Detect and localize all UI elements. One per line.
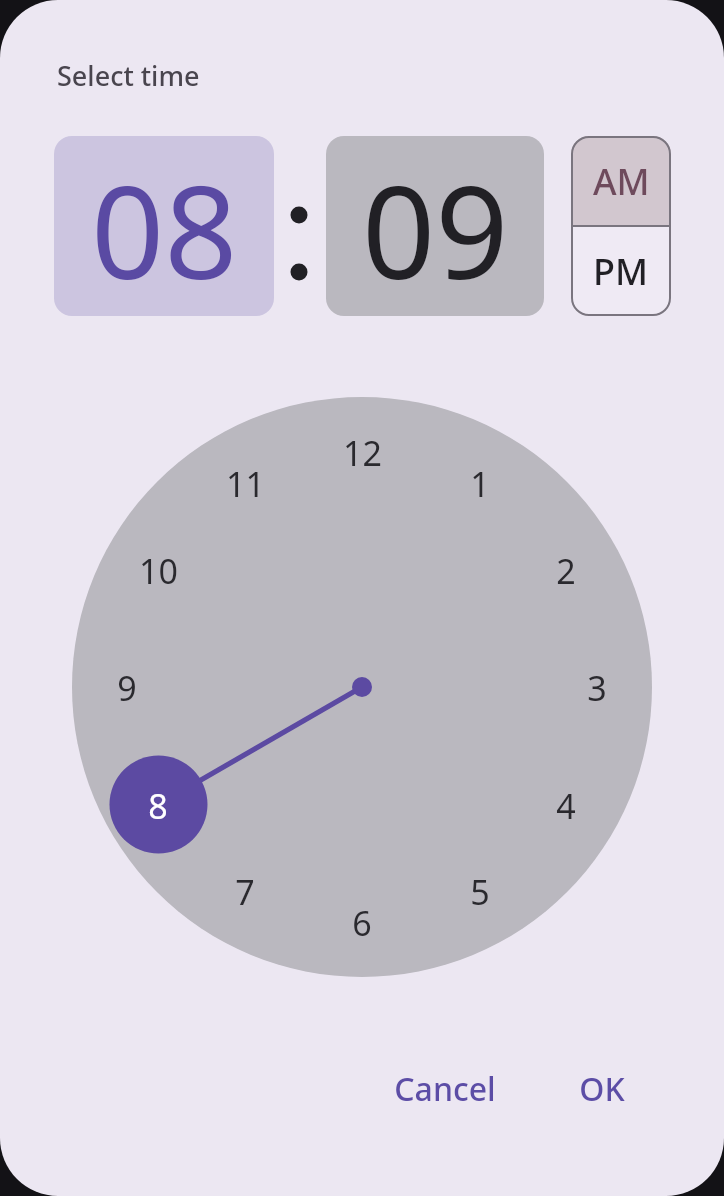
button[interactable]: AM — [571, 136, 671, 226]
button[interactable]: 9 — [87, 665, 167, 709]
staticText: Select time — [57, 57, 200, 94]
staticText: OK — [579, 1067, 625, 1111]
button[interactable]: 8 — [118, 783, 198, 827]
button[interactable]: 12 — [322, 430, 402, 474]
button[interactable]: 7 — [205, 869, 285, 913]
button[interactable]: 11 — [205, 461, 285, 505]
staticText: 7 — [235, 869, 255, 913]
staticText: 1 — [470, 461, 490, 505]
button[interactable]: 09 — [326, 136, 544, 316]
button[interactable]: 6 — [322, 900, 402, 944]
staticText: Cancel — [394, 1067, 496, 1111]
staticText: AM — [593, 157, 650, 206]
button[interactable]: OK — [557, 1061, 647, 1117]
staticText: PM — [593, 247, 649, 296]
staticText: 6 — [352, 900, 372, 944]
staticText: 12 — [343, 430, 382, 474]
button[interactable]: 2 — [526, 548, 606, 592]
staticText: 3 — [587, 665, 607, 709]
staticText: 08 — [91, 142, 238, 316]
staticText: 11 — [226, 461, 265, 505]
staticText: 5 — [470, 869, 490, 913]
staticText: 9 — [117, 665, 137, 709]
staticText: 10 — [139, 548, 178, 592]
staticText: 4 — [556, 783, 576, 827]
button[interactable]: 5 — [440, 869, 520, 913]
button[interactable]: 3 — [557, 665, 637, 709]
button[interactable]: 08 — [54, 136, 274, 316]
staticText: 09 — [362, 142, 509, 316]
button[interactable]: PM — [571, 226, 671, 316]
button[interactable]: 1 — [440, 461, 520, 505]
button[interactable]: Cancel — [372, 1061, 518, 1117]
staticText: 8 — [148, 783, 168, 827]
button[interactable]: 10 — [118, 548, 198, 592]
staticText: 2 — [556, 548, 576, 592]
button[interactable]: 4 — [526, 783, 606, 827]
